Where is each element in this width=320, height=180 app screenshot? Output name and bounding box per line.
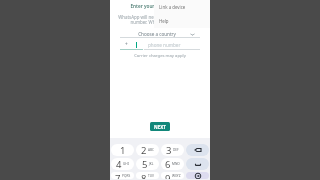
staticText: PQRS	[122, 174, 131, 178]
button[interactable]: NEXT	[150, 122, 170, 131]
button[interactable]: 2	[136, 144, 159, 156]
button[interactable]: Help	[154, 14, 210, 28]
button[interactable]: 7	[111, 172, 134, 179]
button[interactable]: 4	[111, 158, 134, 170]
staticText: 9	[165, 172, 171, 179]
button[interactable]: 5	[136, 158, 159, 170]
staticText: WXYZ	[172, 174, 181, 178]
button[interactable]: Choose a country	[120, 31, 200, 38]
staticText: 3	[166, 144, 172, 156]
button[interactable]: 6	[161, 158, 184, 170]
button[interactable]: 1	[111, 144, 134, 156]
button[interactable]: 3	[161, 144, 184, 156]
staticText: Link a device	[159, 4, 186, 10]
button[interactable]: Enter	[186, 172, 209, 179]
staticText: NEXT	[154, 124, 166, 130]
button[interactable]: Space	[186, 158, 209, 170]
button[interactable]: 9	[161, 172, 184, 179]
staticText: 7	[115, 172, 121, 179]
staticText: GHI	[123, 162, 129, 166]
staticText: Help	[159, 18, 169, 24]
staticText: 1	[120, 144, 126, 156]
staticText: TUV	[148, 174, 155, 178]
staticText: Carrier charges may apply	[110, 53, 210, 59]
button[interactable]: Backspace	[186, 144, 209, 156]
staticText: 6	[165, 158, 171, 170]
staticText: DEF	[173, 148, 179, 152]
button[interactable]: 8	[136, 172, 159, 179]
button[interactable]: Link a device	[154, 0, 210, 14]
staticText: MNO	[172, 162, 180, 166]
staticText: ABC	[148, 148, 155, 152]
staticText: phone number	[148, 42, 200, 48]
staticText: +	[125, 41, 128, 48]
staticText: 4	[116, 158, 122, 170]
staticText: Choose a country	[120, 31, 194, 37]
staticText: WhatsApp will need to verify your phone …	[117, 14, 203, 26]
staticText: JKL	[149, 162, 154, 166]
staticText: 2	[141, 144, 147, 156]
staticText: 5	[142, 158, 148, 170]
staticText: Enter your phone number	[110, 3, 210, 9]
staticText: 8	[141, 172, 147, 179]
